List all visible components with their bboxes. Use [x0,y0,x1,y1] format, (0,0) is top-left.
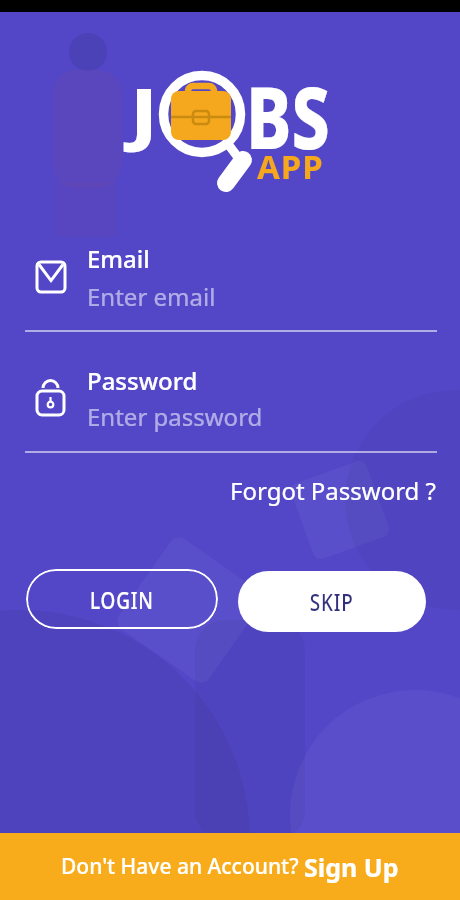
staticText: Password [87,364,198,397]
staticText: LOGIN [90,584,154,615]
button[interactable]: Email [84,240,364,322]
staticText: Sign Up [304,850,399,884]
button[interactable]: SKIP [238,571,426,632]
staticText: J [130,65,159,158]
staticText: APP [257,144,324,189]
staticText: Forgot Password ? [230,474,437,507]
button[interactable]: LOGIN [26,569,218,629]
staticText: SKIP [310,586,354,617]
staticText: Don't Have an Account? [61,852,304,881]
staticText: Enter password [87,400,263,433]
button[interactable]: Password [84,362,364,444]
button[interactable]: Don't Have an Account? [0,833,460,900]
staticText: Email [87,242,150,275]
staticText: BS [246,58,330,174]
button[interactable]: Forgot Password ? [200,473,437,507]
staticText: Enter email [87,280,216,313]
